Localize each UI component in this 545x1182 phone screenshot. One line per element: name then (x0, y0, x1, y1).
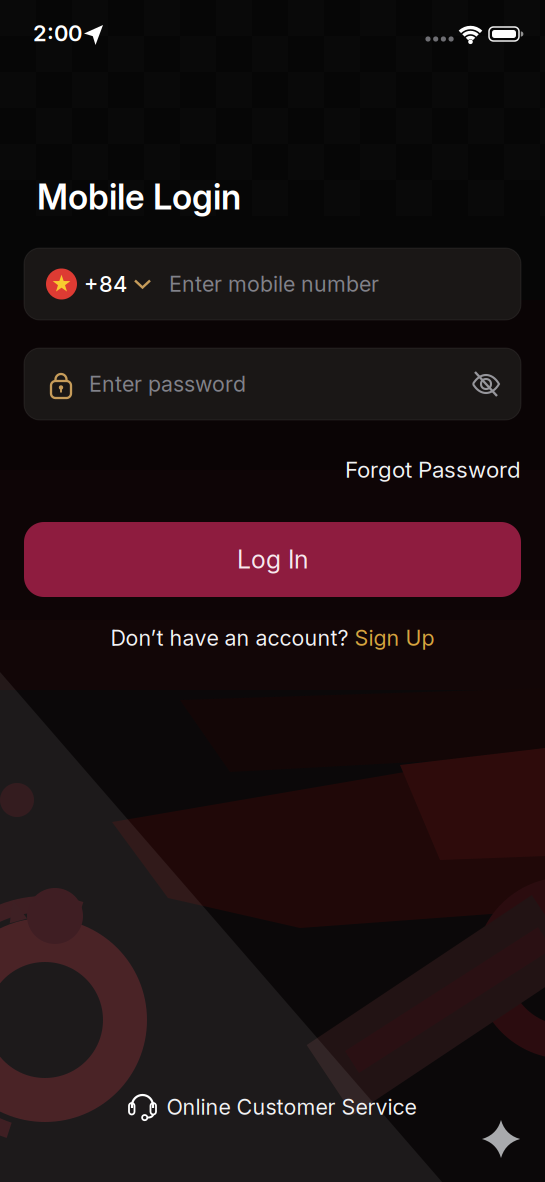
staticText: +84 (84, 271, 127, 297)
staticText: Enter mobile number (169, 271, 379, 297)
staticText: Log In (237, 544, 308, 575)
staticText: Mobile Login (37, 176, 241, 218)
staticText: 2:00 (33, 20, 82, 47)
staticText: Forgot Password (345, 456, 521, 483)
button[interactable]: Online Customer Service (128, 1092, 416, 1122)
button[interactable]: Log In (24, 522, 521, 597)
button[interactable]: Sign Up (354, 625, 434, 651)
staticText: Enter password (89, 371, 246, 397)
staticText: Don’t have an account? (110, 625, 354, 651)
staticText: Online Customer Service (166, 1094, 416, 1120)
button[interactable]: Assistant (482, 1120, 520, 1158)
staticText: Sign Up (354, 625, 434, 651)
button[interactable]: Select country code (46, 268, 151, 299)
button[interactable]: Show password (471, 371, 501, 397)
button[interactable]: Forgot Password (345, 456, 521, 483)
